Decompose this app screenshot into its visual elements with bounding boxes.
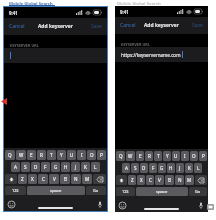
button[interactable]: S — [21, 162, 30, 172]
button[interactable]: T — [154, 151, 162, 161]
button[interactable]: Dictation — [98, 201, 102, 208]
staticText: J — [75, 164, 77, 170]
button[interactable]: Q — [5, 150, 15, 160]
staticText: W — [128, 153, 133, 159]
button[interactable]: B — [60, 174, 70, 184]
button[interactable]: I — [77, 150, 86, 160]
button[interactable]: F — [149, 163, 157, 173]
staticText: F — [44, 164, 47, 170]
button[interactable]: C — [38, 174, 48, 184]
button[interactable]: H — [61, 162, 70, 172]
button[interactable]: D — [140, 163, 148, 173]
button[interactable]: Y — [163, 151, 171, 161]
staticText: O — [192, 153, 196, 159]
button[interactable]: H — [167, 163, 175, 173]
button[interactable]: V — [49, 174, 59, 184]
staticText: Save — [192, 22, 203, 29]
button[interactable]: N — [71, 174, 81, 184]
staticText: Z — [21, 176, 24, 182]
staticText: KEYSERVER URL — [121, 42, 150, 47]
button[interactable]: A — [122, 163, 130, 173]
button[interactable]: Go — [86, 186, 106, 195]
staticText: G — [160, 165, 164, 171]
button[interactable]: R — [145, 151, 153, 161]
staticText: Add keyserver — [144, 22, 179, 29]
button[interactable]: Q — [116, 151, 125, 161]
button[interactable]: Cancel — [115, 18, 141, 33]
button[interactable]: M — [185, 175, 194, 185]
button[interactable]: L — [194, 163, 202, 173]
staticText: F — [152, 165, 155, 171]
button[interactable]: 123 — [116, 187, 135, 196]
staticText: L — [94, 164, 97, 170]
staticText: Cancel — [9, 23, 25, 30]
button[interactable]: K — [185, 163, 193, 173]
button[interactable]: O — [190, 151, 198, 161]
button[interactable]: X — [137, 175, 145, 185]
button[interactable]: X — [28, 174, 37, 184]
button[interactable]: T — [47, 150, 56, 160]
button[interactable]: V — [155, 175, 164, 185]
button[interactable]: Cancel — [4, 19, 30, 34]
button[interactable]: U — [67, 150, 76, 160]
button[interactable]: M — [82, 174, 92, 184]
button[interactable]: Add keyserver — [36, 21, 75, 32]
button[interactable]: F — [41, 162, 50, 172]
button[interactable]: Backspace — [195, 175, 207, 185]
button[interactable]: P — [97, 150, 106, 160]
button[interactable]: space — [136, 187, 188, 196]
staticText: KEYSERVER URL — [10, 43, 39, 48]
button[interactable]: G — [51, 162, 60, 172]
button[interactable]: C — [146, 175, 154, 185]
button[interactable]: W — [16, 150, 26, 160]
staticText: J — [179, 165, 181, 171]
button[interactable]: W — [126, 151, 135, 161]
button[interactable]: E — [27, 150, 36, 160]
button[interactable]: G — [158, 163, 166, 173]
button[interactable]: https://keyservername.com — [115, 47, 208, 62]
button[interactable]: A — [11, 162, 20, 172]
button[interactable]: Emoji keyboard — [8, 201, 15, 208]
staticText: Mobile Global Search — [9, 1, 53, 7]
button[interactable]: I — [181, 151, 189, 161]
staticText: S — [24, 164, 27, 170]
button[interactable]: O — [87, 150, 96, 160]
button[interactable]: Backspace — [93, 174, 106, 184]
button[interactable]: Save — [86, 19, 107, 34]
staticText: W — [19, 152, 24, 158]
button[interactable]: N — [175, 175, 184, 185]
staticText: T — [157, 153, 160, 159]
button[interactable]: R — [37, 150, 46, 160]
button[interactable]: D — [31, 162, 40, 172]
button[interactable]: Dictation — [199, 202, 203, 209]
button[interactable]: U — [172, 151, 180, 161]
staticText: Go — [195, 189, 201, 194]
staticText: Add keyserver — [38, 23, 73, 30]
button[interactable] — [4, 48, 107, 63]
staticText: E — [30, 152, 33, 158]
button[interactable]: Z — [128, 175, 136, 185]
button[interactable]: Z — [18, 174, 27, 184]
button[interactable]: Shift — [116, 175, 127, 185]
button[interactable]: J — [176, 163, 184, 173]
staticText: N — [74, 176, 78, 182]
staticText: H — [64, 164, 68, 170]
staticText: Mobile Global Search — [117, 1, 161, 7]
button[interactable]: space — [27, 186, 85, 195]
button[interactable]: Add keyserver — [142, 20, 181, 31]
button[interactable]: E — [136, 151, 144, 161]
button[interactable]: J — [71, 162, 80, 172]
button[interactable]: Save — [187, 18, 208, 33]
button[interactable]: Shift — [5, 174, 17, 184]
button[interactable]: Go — [189, 187, 207, 196]
staticText: Y — [60, 152, 63, 158]
button[interactable]: Emoji keyboard — [119, 202, 126, 209]
button[interactable]: S — [131, 163, 139, 173]
button[interactable]: L — [91, 162, 100, 172]
button[interactable]: 123 — [5, 186, 26, 195]
button[interactable]: P — [199, 151, 207, 161]
button[interactable]: K — [81, 162, 90, 172]
button[interactable]: B — [165, 175, 174, 185]
staticText: Z — [131, 177, 134, 183]
button[interactable]: Y — [57, 150, 66, 160]
